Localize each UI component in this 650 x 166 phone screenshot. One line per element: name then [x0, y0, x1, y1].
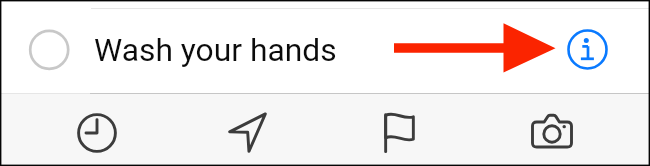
button[interactable]: Remind me at a location [173, 94, 325, 166]
button[interactable]: More info [567, 29, 608, 70]
staticText: Wash your hands [94, 31, 337, 68]
button[interactable]: Wash your hands [0, 0, 650, 93]
button[interactable]: Remind me at a time [21, 94, 173, 166]
button[interactable]: Flag [325, 94, 477, 166]
button[interactable]: Add photo [477, 94, 629, 166]
